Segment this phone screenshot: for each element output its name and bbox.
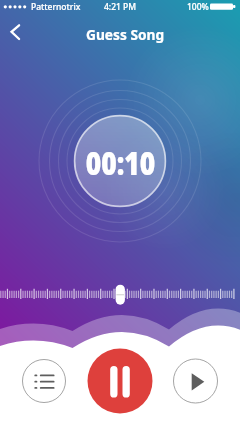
- button[interactable]: Pause: [88, 349, 153, 414]
- staticText: Patternotrix: [31, 1, 81, 13]
- staticText: 4:21 PM: [104, 1, 137, 13]
- staticText: 00:10: [86, 141, 155, 184]
- staticText: 100%: [187, 1, 209, 13]
- button[interactable]: Back: [3, 18, 29, 44]
- button[interactable]: Playlist: [22, 359, 66, 403]
- button[interactable]: Play: [173, 359, 218, 404]
- staticText: Guess Song: [86, 24, 165, 44]
